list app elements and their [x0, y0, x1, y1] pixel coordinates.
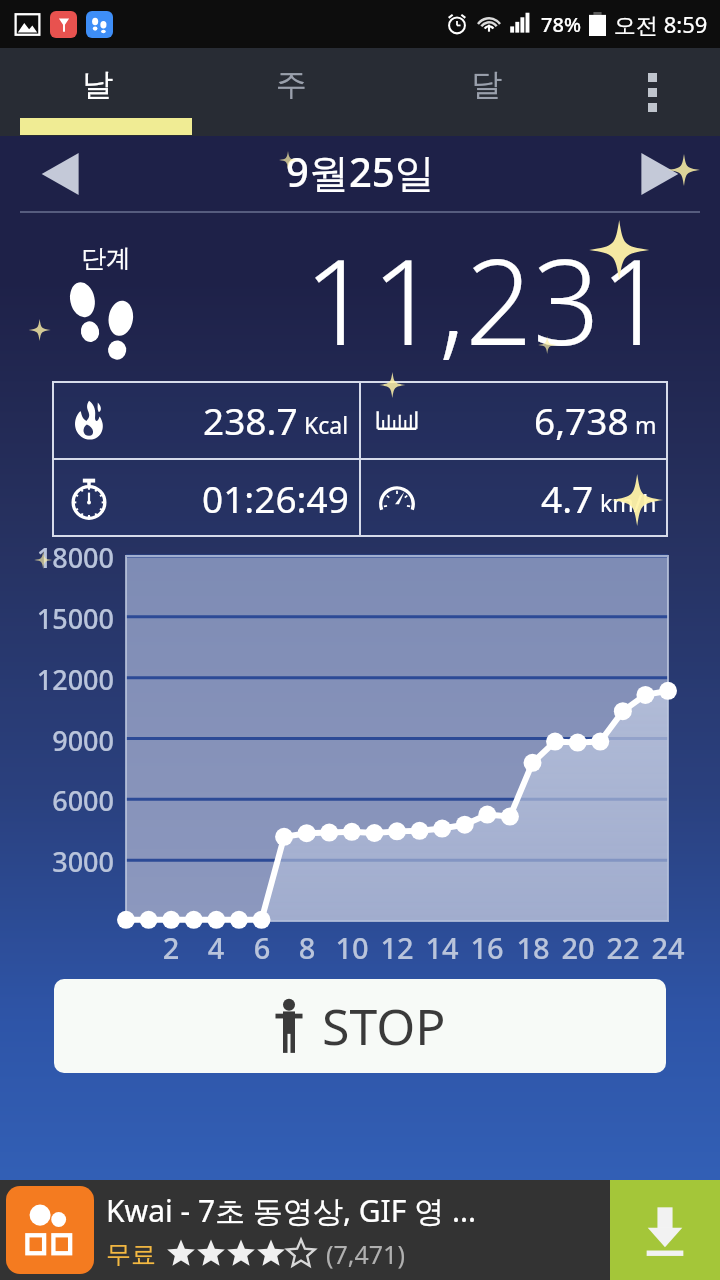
staticText: 9000: [2, 722, 114, 759]
staticText: STOP: [322, 992, 446, 1060]
button[interactable]: 01:26:49: [53, 460, 359, 536]
staticText: 날: [82, 65, 113, 104]
button[interactable]: 날: [0, 48, 194, 136]
staticText: 4.7: [541, 473, 594, 523]
staticText: 11,231: [304, 219, 668, 380]
staticText: 4: [186, 928, 246, 967]
staticText: 2: [141, 928, 201, 967]
staticText: 6: [232, 928, 292, 967]
staticText: 22: [593, 928, 653, 967]
staticText: 9월25일: [286, 144, 435, 199]
staticText: 6,738: [534, 395, 629, 445]
staticText: 78%: [541, 11, 581, 38]
button[interactable]: 238.7: [53, 382, 359, 458]
button[interactable]: Kwai - 7초 동영상, GIF 영 ...: [0, 1180, 720, 1280]
staticText: 달: [471, 65, 502, 104]
staticText: 18000: [2, 539, 114, 576]
staticText: 16: [457, 928, 517, 967]
staticText: 10: [322, 928, 382, 967]
staticText: 6000: [2, 782, 114, 819]
staticText: 오전 8:59: [614, 9, 708, 39]
button[interactable]: More options: [584, 48, 720, 136]
staticText: 14: [412, 928, 472, 967]
staticText: km/h: [600, 487, 657, 518]
button[interactable]: 4.7: [361, 460, 667, 536]
button[interactable]: 달: [389, 48, 584, 136]
staticText: m: [635, 409, 657, 440]
staticText: 단계: [81, 243, 131, 274]
staticText: Kwai - 7초 동영상, GIF 영 ...: [106, 1190, 477, 1231]
button[interactable]: Next day: [628, 146, 690, 202]
button[interactable]: STOP: [54, 979, 666, 1073]
staticText: (7,471): [326, 1237, 405, 1271]
staticText: 15000: [2, 600, 114, 637]
staticText: 01:26:49: [202, 473, 349, 523]
staticText: 18: [503, 928, 563, 967]
staticText: 8: [277, 928, 337, 967]
staticText: 238.7: [203, 395, 298, 445]
staticText: 12: [367, 928, 427, 967]
staticText: 24: [638, 928, 698, 967]
staticText: 20: [548, 928, 608, 967]
staticText: 12000: [2, 661, 114, 698]
button[interactable]: 6,738: [361, 382, 667, 458]
staticText: Kcal: [304, 409, 349, 440]
staticText: 주: [276, 65, 307, 104]
button[interactable]: 주: [194, 48, 389, 136]
staticText: 3000: [2, 843, 114, 880]
button[interactable]: Previous day: [30, 146, 92, 202]
staticText: 무료: [106, 1239, 156, 1270]
